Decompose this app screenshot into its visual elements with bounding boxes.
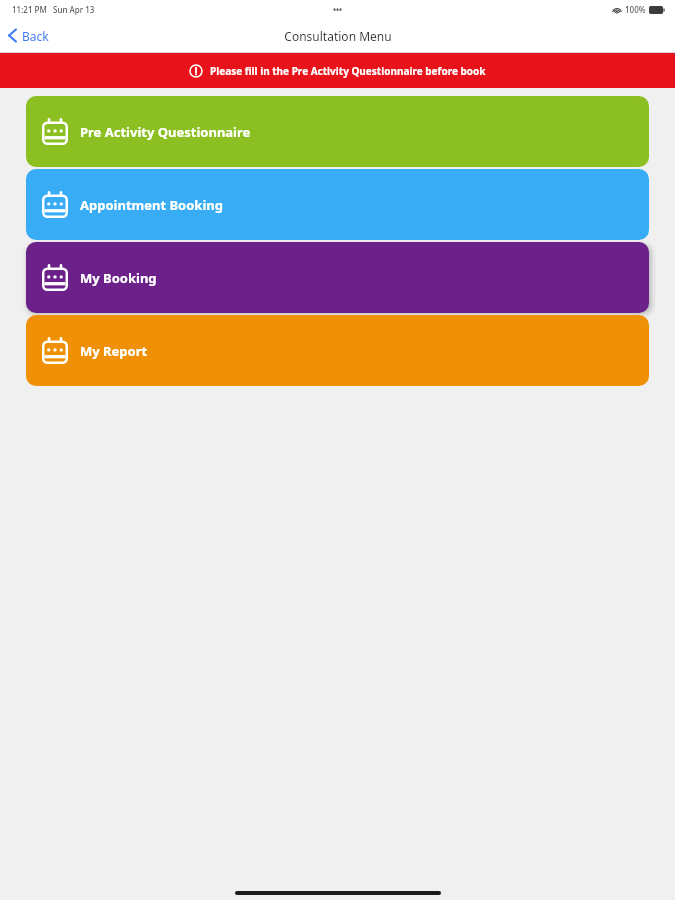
- staticText: Consultation Menu: [284, 28, 392, 44]
- staticText: 100%: [625, 4, 646, 15]
- button[interactable]: My Report: [26, 315, 649, 386]
- button[interactable]: Pre Activity Questionnaire: [26, 96, 649, 167]
- staticText: Back: [22, 28, 49, 44]
- staticText: My Booking: [80, 269, 157, 287]
- button[interactable]: Back: [0, 18, 59, 53]
- staticText: 11:21 PM Sun Apr 13: [12, 4, 95, 15]
- staticText: Pre Activity Questionnaire: [80, 123, 251, 141]
- button[interactable]: Appointment Booking: [26, 169, 649, 240]
- staticText: •••: [333, 4, 343, 15]
- staticText: Please fill in the Pre Activity Question…: [210, 64, 486, 78]
- staticText: My Report: [80, 342, 148, 360]
- button[interactable]: My Booking: [26, 242, 649, 313]
- staticText: Appointment Booking: [80, 196, 223, 214]
